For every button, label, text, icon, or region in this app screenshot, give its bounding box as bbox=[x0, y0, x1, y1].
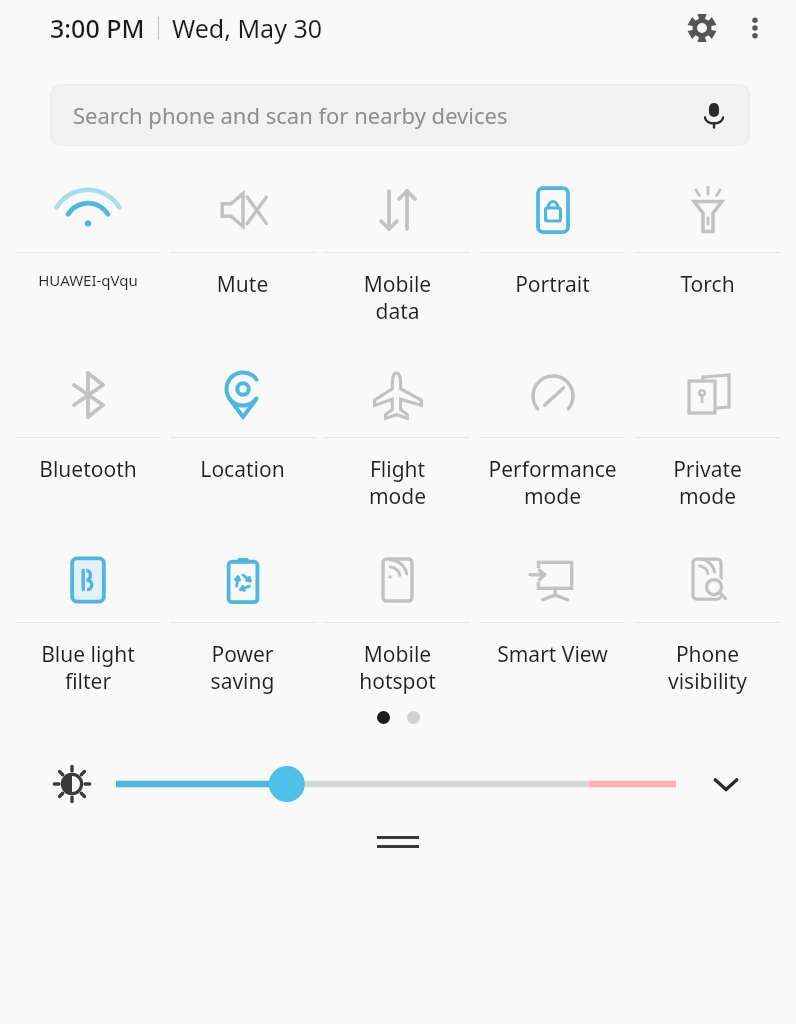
button[interactable]: Search phone and scan for nearby devices bbox=[50, 84, 750, 146]
button[interactable]: Private mode bbox=[630, 353, 785, 510]
button[interactable] bbox=[116, 764, 676, 804]
button[interactable]: Blue light filter bbox=[11, 538, 165, 695]
staticText: Search phone and scan for nearby devices bbox=[73, 100, 508, 130]
staticText: Portrait bbox=[475, 270, 630, 299]
staticText: Flight mode bbox=[320, 455, 475, 510]
button[interactable]: Expand brightness settings bbox=[702, 760, 750, 808]
button[interactable]: Mobile data bbox=[320, 168, 475, 325]
button[interactable]: Mute bbox=[165, 168, 320, 299]
staticText: 3:00 PM bbox=[50, 11, 145, 45]
button[interactable]: Smart View bbox=[475, 538, 630, 669]
staticText: Power saving bbox=[165, 640, 320, 695]
staticText: Wed, May 30 bbox=[172, 11, 322, 45]
button[interactable]: Settings bbox=[674, 0, 730, 56]
button[interactable]: Performance mode bbox=[475, 353, 630, 510]
button[interactable]: Phone visibility bbox=[630, 538, 785, 695]
staticText: Mobile hotspot bbox=[320, 640, 475, 695]
button[interactable]: Voice search bbox=[692, 93, 736, 137]
button[interactable]: Portrait bbox=[475, 168, 630, 299]
staticText: Performance mode bbox=[475, 455, 630, 510]
button[interactable]: Flight mode bbox=[320, 353, 475, 510]
staticText: Phone visibility bbox=[630, 640, 785, 695]
button[interactable]: Bluetooth bbox=[11, 353, 165, 484]
button[interactable]: HUAWEI-qVqu bbox=[11, 168, 165, 290]
staticText: Torch bbox=[630, 270, 785, 299]
staticText: Location bbox=[165, 455, 320, 484]
staticText: HUAWEI-qVqu bbox=[11, 270, 165, 290]
button[interactable]: Location bbox=[165, 353, 320, 484]
staticText: Mobile data bbox=[320, 270, 475, 325]
staticText: Bluetooth bbox=[11, 455, 165, 484]
staticText: Smart View bbox=[475, 640, 630, 669]
button[interactable]: More options bbox=[730, 3, 780, 53]
button[interactable]: Brightness bbox=[50, 762, 94, 806]
button[interactable]: Mobile hotspot bbox=[320, 538, 475, 695]
staticText: Blue light filter bbox=[11, 640, 165, 695]
button[interactable]: Torch bbox=[630, 168, 785, 299]
staticText: Private mode bbox=[630, 455, 785, 510]
staticText: Mute bbox=[165, 270, 320, 299]
button[interactable]: Power saving bbox=[165, 538, 320, 695]
